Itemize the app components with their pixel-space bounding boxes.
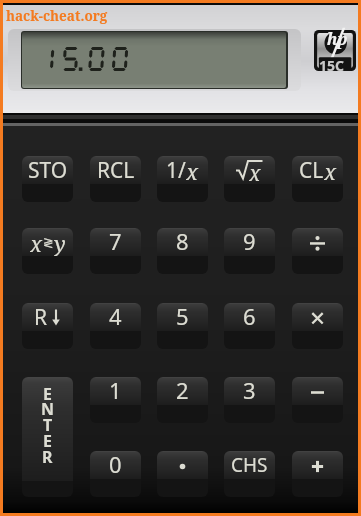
button[interactable]: Clear x <box>292 156 343 202</box>
button[interactable]: 8 <box>157 228 208 274</box>
button[interactable]: RCL <box>90 156 141 202</box>
button[interactable]: 1 <box>90 377 141 423</box>
other: HP 15C <box>314 30 356 71</box>
staticText: 15C <box>319 56 345 75</box>
staticText: hack-cheat.org <box>6 7 108 25</box>
button[interactable]: Enter <box>22 377 73 497</box>
staticText: y <box>54 228 66 256</box>
staticText: R <box>34 303 48 331</box>
button[interactable]: x exchange y <box>22 228 73 274</box>
staticText: E <box>43 383 52 405</box>
staticText: R <box>42 446 53 468</box>
button[interactable]: square root of x <box>224 156 275 202</box>
button[interactable]: 2 <box>157 377 208 423</box>
button[interactable]: 4 <box>90 303 141 349</box>
staticText: 6 <box>243 303 256 329</box>
button[interactable]: 7 <box>90 228 141 274</box>
staticText: CL <box>299 156 324 184</box>
staticText: 0 <box>109 451 122 477</box>
button[interactable]: 9 <box>224 228 275 274</box>
button[interactable]: 5 <box>157 303 208 349</box>
staticText: 8 <box>176 228 189 254</box>
staticText: ≷ <box>43 235 54 250</box>
staticText: x <box>30 228 43 256</box>
staticText: 5 <box>176 303 189 329</box>
button[interactable]: divide <box>292 228 343 274</box>
button[interactable]: 6 <box>224 303 275 349</box>
button[interactable]: multiply <box>292 303 343 349</box>
staticText: 7 <box>109 228 122 254</box>
staticText: x <box>249 159 261 187</box>
staticText: 1 <box>109 377 122 403</box>
staticText: RCL <box>97 156 135 184</box>
button[interactable]: minus <box>292 377 343 423</box>
staticText: STO <box>28 156 68 184</box>
staticText: E <box>43 430 52 452</box>
button[interactable]: STO <box>22 156 73 202</box>
button[interactable]: 3 <box>224 377 275 423</box>
staticText: hp <box>327 28 348 50</box>
staticText: N <box>41 398 55 420</box>
staticText: x <box>324 156 337 184</box>
button[interactable]: one over x <box>157 156 208 202</box>
button[interactable]: 0 <box>90 451 141 497</box>
staticText: x <box>186 156 199 184</box>
staticText: CHS <box>231 452 268 478</box>
button[interactable]: decimal point <box>157 451 208 497</box>
button[interactable]: plus <box>292 451 343 497</box>
button[interactable]: roll down <box>22 303 73 349</box>
staticText: 9 <box>243 228 256 254</box>
staticText: 4 <box>109 303 122 329</box>
staticText: 1/ <box>166 156 186 184</box>
button[interactable]: CHS <box>224 451 275 497</box>
staticText: 3 <box>243 377 256 403</box>
staticText: 2 <box>176 377 189 403</box>
staticText: T <box>43 414 53 436</box>
